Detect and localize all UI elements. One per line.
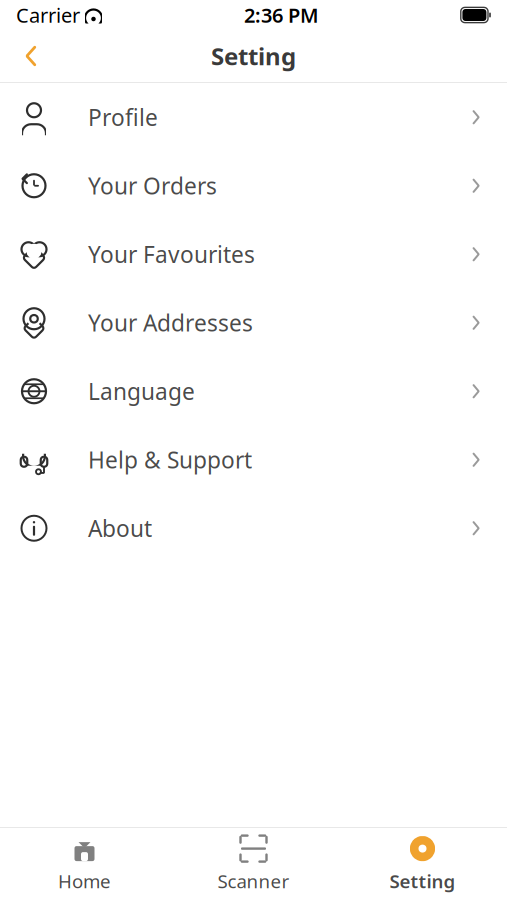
staticText: Scanner — [217, 869, 289, 893]
button[interactable]: About — [0, 494, 507, 562]
button[interactable]: Back — [8, 33, 54, 79]
button[interactable]: Your Orders — [0, 151, 507, 220]
button[interactable]: Profile — [0, 83, 507, 151]
button[interactable]: Your Addresses — [0, 288, 507, 357]
button[interactable]: Home — [0, 828, 169, 900]
staticText: Your Addresses — [88, 308, 253, 338]
staticText: Setting — [389, 869, 455, 893]
button[interactable]: Setting — [338, 828, 507, 900]
staticText: Help & Support — [88, 445, 252, 475]
button[interactable]: Scanner — [169, 828, 338, 900]
staticText: Your Favourites — [88, 239, 255, 269]
staticText: Your Orders — [88, 171, 217, 201]
staticText: Home — [58, 869, 111, 893]
staticText: 2:36 PM — [244, 2, 319, 28]
button[interactable]: Help & Support — [0, 425, 507, 494]
staticText: Profile — [88, 102, 158, 132]
staticText: Carrier — [16, 2, 80, 28]
staticText: Setting — [211, 40, 296, 72]
button[interactable]: Language — [0, 357, 507, 425]
staticText: Language — [88, 376, 195, 406]
staticText: About — [88, 513, 152, 543]
button[interactable]: Your Favourites — [0, 220, 507, 288]
